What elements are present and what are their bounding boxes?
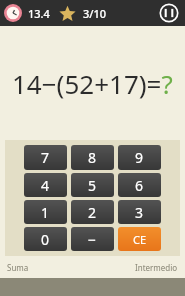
button[interactable]: Pause xyxy=(158,2,180,24)
button[interactable]: 7 xyxy=(24,145,67,170)
button[interactable]: 6 xyxy=(118,173,161,197)
button[interactable]: 8 xyxy=(71,145,114,170)
button[interactable]: 9 xyxy=(118,145,161,170)
staticText: 0 xyxy=(41,230,50,249)
other: Timer xyxy=(4,4,22,22)
button[interactable]: 3 xyxy=(118,200,161,224)
button[interactable]: 2 xyxy=(71,200,114,224)
staticText: Suma xyxy=(7,262,29,273)
staticText: 2 xyxy=(88,203,97,222)
staticText: − xyxy=(88,230,97,249)
button[interactable]: 1 xyxy=(24,200,67,224)
staticText: 5 xyxy=(88,176,97,195)
staticText: 1 xyxy=(41,203,50,222)
staticText: 13.4 xyxy=(28,6,50,21)
button[interactable]: 5 xyxy=(71,173,114,197)
staticText: 6 xyxy=(135,176,144,195)
staticText: 4 xyxy=(41,176,50,195)
staticText: 14−(52+17)=? xyxy=(12,66,173,101)
staticText: 7 xyxy=(41,148,50,167)
staticText: Intermedio xyxy=(135,262,178,273)
staticText: 8 xyxy=(88,148,97,167)
button[interactable]: CE xyxy=(118,227,161,251)
button[interactable]: 4 xyxy=(24,173,67,197)
staticText: 3 xyxy=(135,203,144,222)
staticText: 9 xyxy=(135,148,144,167)
button[interactable]: − xyxy=(71,227,114,251)
button[interactable]: 0 xyxy=(24,227,67,251)
staticText: 3/10 xyxy=(83,6,107,21)
staticText: CE xyxy=(133,232,147,247)
